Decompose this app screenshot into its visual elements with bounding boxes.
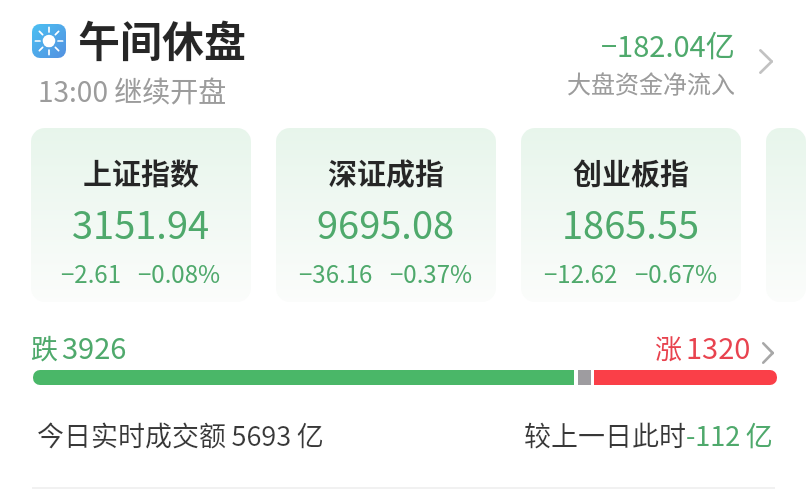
staticText: 较上一日此时 (524, 415, 686, 454)
staticText: 3926 (62, 325, 127, 367)
staticText: −0.37% (390, 255, 473, 290)
staticText: -112 亿 (686, 415, 773, 454)
other: 午间休盘 (32, 24, 66, 58)
staticText: 1320 (686, 325, 751, 367)
staticText: 今日实时成交额 5693 亿 (37, 415, 324, 454)
button[interactable]: 大盘资金净流入 −182.04亿 (567, 0, 806, 100)
staticText: 13:00 继续开盘 (38, 70, 227, 111)
staticText: 深证成指 (328, 151, 445, 193)
staticText: −2.61 (61, 255, 121, 290)
button[interactable]: 创业板指 (521, 128, 741, 302)
staticText: 跌 (31, 328, 58, 367)
staticText: −0.67% (635, 255, 718, 290)
staticText: −12.62 (544, 255, 618, 290)
staticText: 涨 (655, 328, 682, 367)
staticText: 午间休盘 (78, 8, 247, 69)
staticText: 上证指数 (83, 151, 200, 193)
staticText: 1865.55 (562, 195, 700, 250)
staticText: −182.04亿 (601, 23, 735, 65)
button[interactable]: 跌 (0, 325, 806, 367)
staticText: −0.08% (138, 255, 221, 290)
staticText: 大盘资金净流入 (567, 65, 735, 100)
button[interactable]: 深证成指 (276, 128, 496, 302)
other: 查看涨跌家数详情 (762, 342, 774, 364)
staticText: 创业板指 (573, 151, 690, 193)
staticText: 3151.94 (72, 195, 210, 250)
staticText: −36.16 (299, 255, 373, 290)
staticText: 9695.08 (317, 195, 455, 250)
other: 查看大盘资金详情 (759, 49, 773, 74)
button[interactable]: 上证指数 (31, 128, 251, 302)
button[interactable] (766, 128, 806, 302)
